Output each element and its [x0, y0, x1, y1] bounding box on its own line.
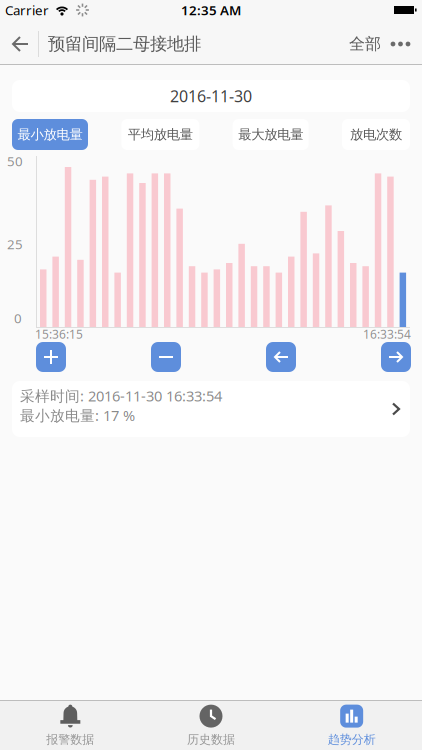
staticText: 0	[14, 309, 22, 327]
staticText: 平均放电量	[128, 126, 193, 143]
button[interactable]: Zoom out	[151, 342, 181, 372]
button[interactable]: 全部	[349, 34, 381, 54]
staticText: 历史数据	[187, 732, 235, 747]
staticText: 报警数据	[46, 732, 94, 747]
staticText: 50	[7, 152, 23, 170]
staticText: Carrier	[5, 1, 49, 19]
staticText: 预留间隔二母接地排	[48, 33, 201, 55]
staticText: 放电次数	[350, 126, 402, 143]
button[interactable]: Back	[0, 36, 38, 52]
button[interactable]: Previous	[266, 342, 296, 372]
staticText: 2016-11-30	[170, 85, 252, 107]
staticText: 最小放电量	[17, 126, 82, 143]
staticText: 采样时间: 2016-11-30 16:33:54	[20, 386, 222, 405]
button[interactable]: 采样时间: 2016-11-30 16:33:54	[0, 381, 422, 437]
button[interactable]: More	[381, 41, 422, 47]
staticText: 最小放电量: 17 %	[20, 405, 135, 425]
button[interactable]: 放电次数	[342, 119, 410, 150]
button[interactable]: 2016-11-30	[0, 80, 422, 112]
staticText: 16:33:54	[363, 326, 411, 342]
button[interactable]: 平均放电量	[121, 119, 199, 150]
staticText: 12:35 AM	[181, 1, 241, 19]
staticText: 全部	[349, 34, 381, 54]
staticText: 25	[7, 235, 23, 253]
button[interactable]: 历史数据	[141, 704, 281, 747]
button[interactable]: 最大放电量	[233, 119, 309, 150]
button[interactable]: 趋势分析	[281, 704, 422, 747]
button[interactable]: 最小放电量	[12, 119, 88, 150]
button[interactable]: Zoom in	[36, 342, 66, 372]
staticText: 趋势分析	[328, 732, 376, 747]
button[interactable]: Next	[381, 342, 411, 372]
button[interactable]: 报警数据	[0, 704, 141, 747]
staticText: 最大放电量	[238, 126, 303, 143]
staticText: 15:36:15	[35, 326, 83, 342]
